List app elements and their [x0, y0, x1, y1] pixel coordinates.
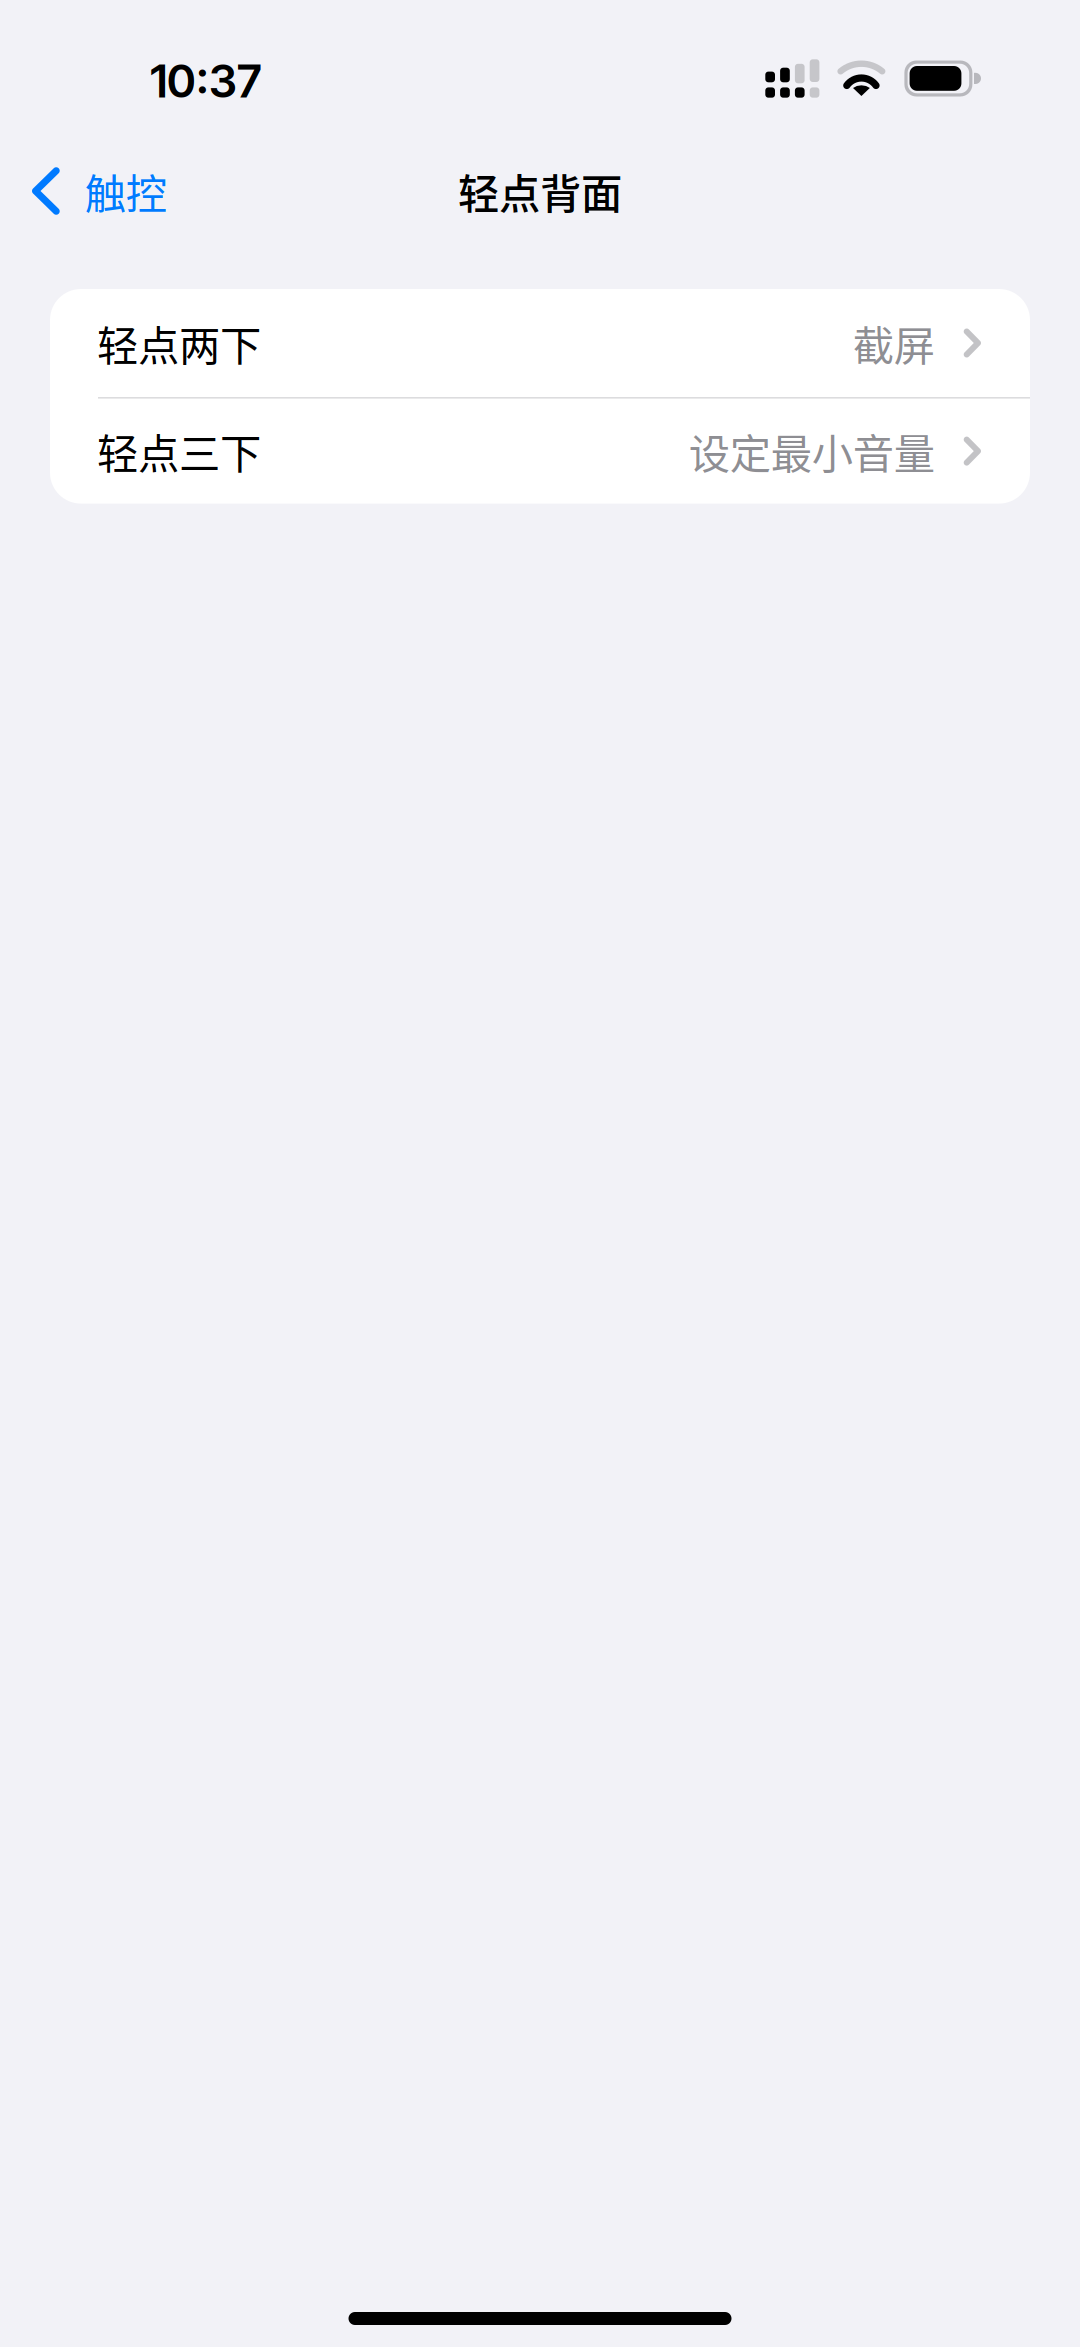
- staticText: 轻点背面: [458, 161, 622, 221]
- staticText: 轻点三下: [97, 421, 261, 481]
- staticText: 设定最小音量: [689, 421, 935, 481]
- staticText: 触控: [85, 161, 167, 221]
- button[interactable]: 轻点两下: [50, 289, 1030, 397]
- staticText: 轻点两下: [97, 313, 261, 373]
- button[interactable]: 轻点三下: [50, 399, 1030, 504]
- button[interactable]: 触控: [0, 143, 191, 239]
- staticText: 10:37: [150, 54, 261, 108]
- staticText: 截屏: [853, 313, 935, 373]
